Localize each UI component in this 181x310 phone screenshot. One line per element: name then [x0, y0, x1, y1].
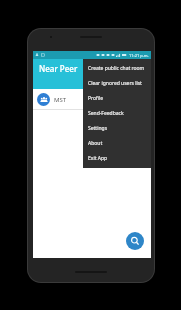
button[interactable]: Clear ignored users list: [83, 76, 151, 91]
staticText: 11:21 p.m.: [129, 53, 149, 58]
button[interactable]: CHATS: [33, 77, 151, 90]
staticText: MST: [54, 96, 67, 104]
staticText: Settings: [88, 125, 108, 132]
staticText: Send-Feedback: [88, 110, 124, 117]
staticText: About: [88, 140, 103, 147]
button[interactable]: Search: [126, 232, 144, 250]
staticText: Clear ignored users list: [88, 80, 142, 87]
button[interactable]: Create public chat room: [83, 61, 151, 76]
button[interactable]: Profile: [83, 91, 151, 106]
staticText: Near Peer: [39, 63, 78, 74]
staticText: Create public chat room: [88, 65, 145, 72]
button[interactable]: MST: [33, 90, 151, 109]
button[interactable]: Settings: [83, 121, 151, 136]
staticText: Exit App: [88, 155, 108, 162]
staticText: CHATS: [85, 81, 99, 87]
button[interactable]: Exit App: [83, 151, 151, 166]
button[interactable]: About: [83, 136, 151, 151]
button[interactable]: Send-Feedback: [83, 106, 151, 121]
staticText: Profile: [88, 95, 104, 102]
